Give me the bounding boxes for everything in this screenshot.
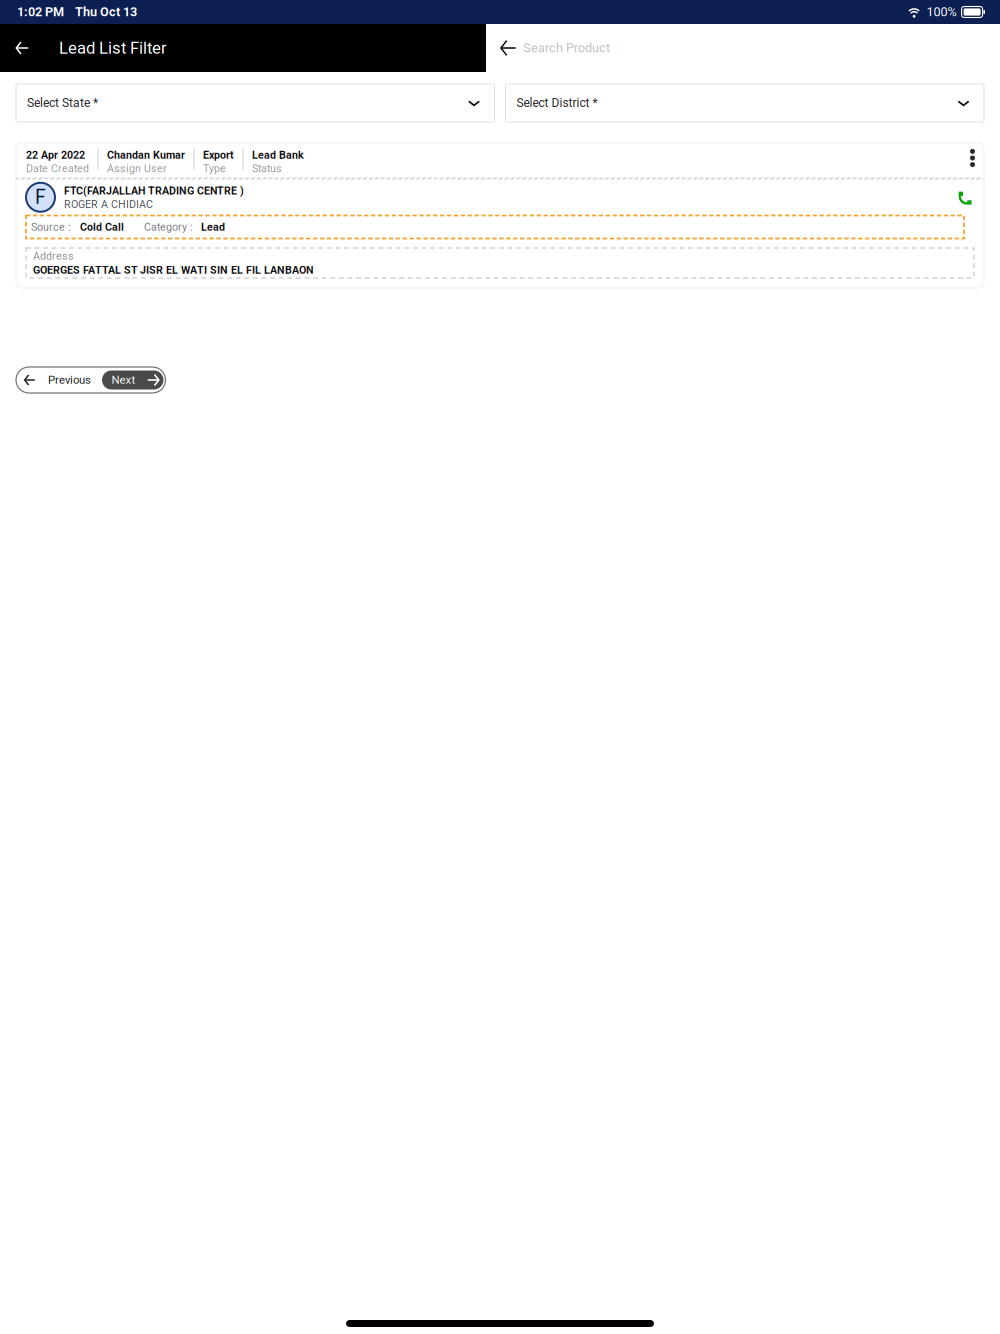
- staticText: Source :: [31, 221, 71, 233]
- button[interactable]: Call: [957, 189, 973, 205]
- staticText: Status: [252, 162, 282, 175]
- staticText: Export: [203, 149, 234, 161]
- button[interactable]: Select State *: [16, 84, 494, 122]
- staticText: Select State *: [27, 96, 98, 110]
- staticText: Thu Oct 13: [75, 5, 137, 19]
- button[interactable]: Select District *: [505, 84, 984, 122]
- button[interactable]: Next: [102, 370, 163, 389]
- staticText: GOERGES FATTAL ST JISR EL WATI SIN EL FI…: [33, 264, 314, 276]
- staticText: Cold Call: [80, 221, 124, 233]
- staticText: Lead Bank: [252, 149, 304, 161]
- staticText: Address: [33, 250, 74, 262]
- staticText: Lead: [201, 221, 225, 233]
- staticText: Lead List Filter: [59, 38, 167, 58]
- button[interactable]: Previous: [18, 369, 102, 391]
- staticText: 100%: [927, 5, 957, 19]
- staticText: Previous: [48, 373, 91, 387]
- staticText: Category :: [144, 221, 193, 233]
- staticText: Next: [111, 373, 135, 387]
- staticText: Chandan Kumar: [107, 149, 185, 161]
- staticText: F: [35, 186, 46, 209]
- staticText: 1:02 PM: [17, 5, 64, 19]
- staticText: Search Product: [523, 41, 610, 55]
- staticText: Date Created: [26, 162, 89, 175]
- staticText: ROGER A CHIDIAC: [64, 198, 153, 210]
- staticText: Select District *: [516, 96, 597, 110]
- staticText: FTC(FARJALLAH TRADING CENTRE ): [64, 184, 244, 197]
- button[interactable]: Back: [7, 24, 37, 72]
- staticText: Assign User: [107, 162, 167, 175]
- button[interactable]: More options: [964, 148, 980, 168]
- button[interactable]: Back: [493, 24, 523, 72]
- staticText: Type: [203, 162, 226, 175]
- staticText: 22 Apr 2022: [26, 149, 85, 161]
